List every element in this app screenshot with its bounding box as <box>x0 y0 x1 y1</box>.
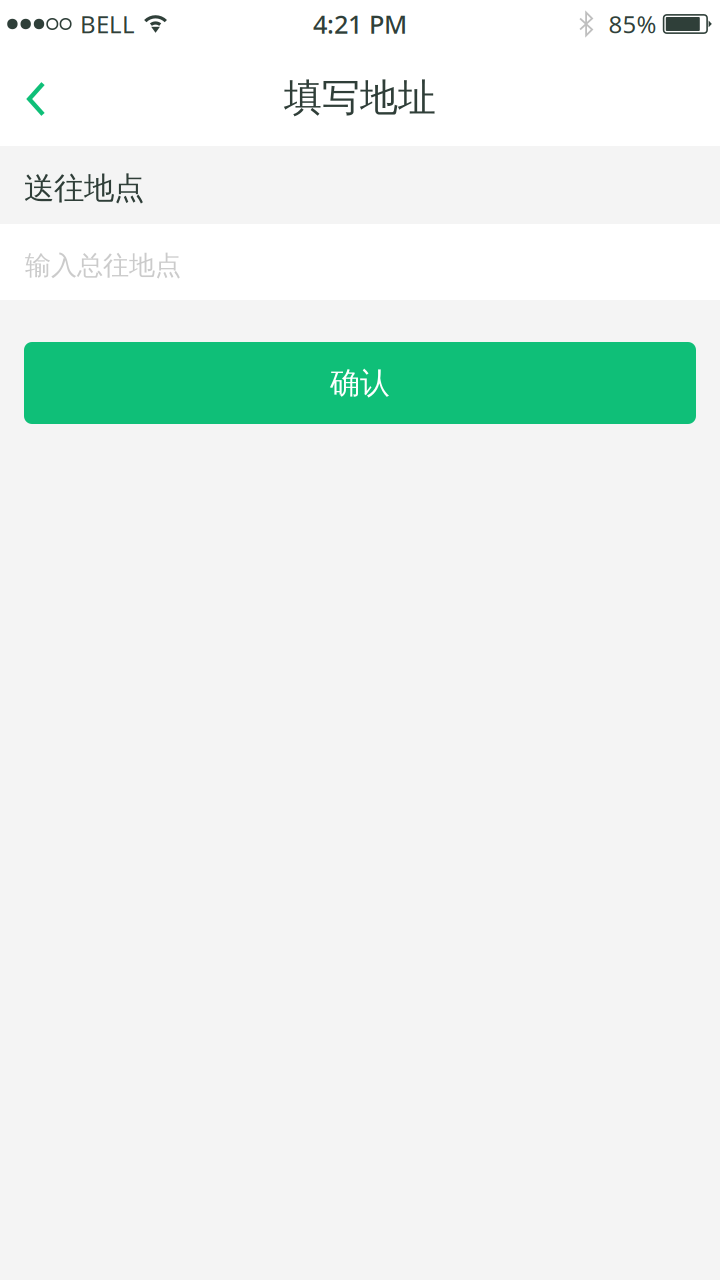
staticText: BELL <box>80 8 135 40</box>
button[interactable]: Back <box>0 63 70 131</box>
button[interactable]: 输入总往地点 <box>0 224 720 300</box>
button[interactable]: 确认 <box>0 342 720 424</box>
staticText: 送往地点 <box>24 169 144 208</box>
staticText: 4:21 PM <box>313 7 407 41</box>
staticText: 输入总往地点 <box>25 249 181 282</box>
staticText: 85% <box>609 8 657 40</box>
staticText: 填写地址 <box>284 74 436 122</box>
staticText: 确认 <box>330 364 390 402</box>
